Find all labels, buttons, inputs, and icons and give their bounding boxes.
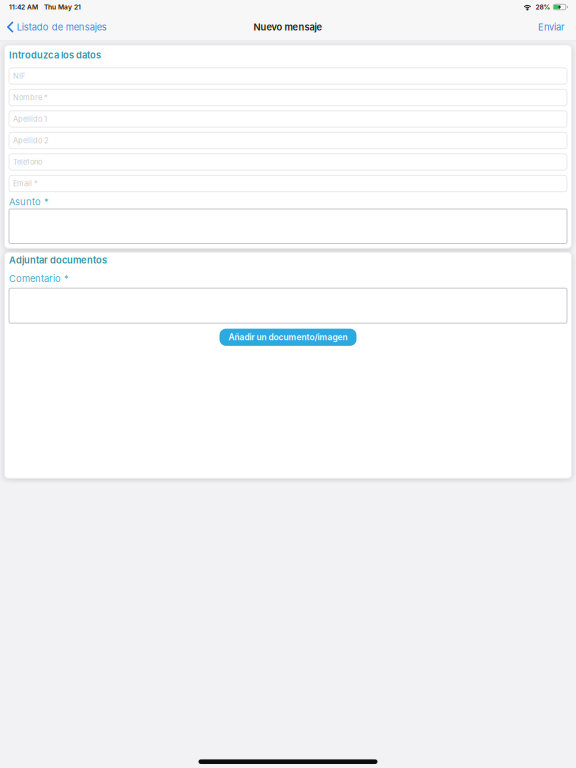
staticText: 11:42 AM [9,3,38,11]
staticText: Thu May 21 [44,3,81,11]
staticText: NIF [13,71,25,80]
staticText: Asunto * [9,196,49,207]
staticText: 28% [535,3,550,11]
button[interactable]: Enviar [528,14,576,40]
button[interactable]: Listado de mensajes [0,14,113,40]
staticText: Listado de mensajes [17,21,107,33]
button[interactable] [9,288,567,323]
staticText: Introduzca los datos [9,49,101,61]
button[interactable] [9,209,567,243]
button[interactable]: Apellido 1 [9,111,567,127]
staticText: Añadir un documento/imagen [228,332,347,342]
button[interactable]: Email * [9,175,567,192]
staticText: Email * [13,179,38,188]
staticText: Apellido 2 [13,136,49,145]
staticText: Comentario * [9,273,69,284]
staticText: Adjuntar documentos [9,254,107,266]
button[interactable]: Nombre * [9,89,567,106]
staticText: Apellido 1 [13,114,47,123]
staticText: Nombre * [13,93,48,102]
staticText: Teléfono [13,157,42,166]
button[interactable]: Apellido 2 [9,132,567,149]
button[interactable]: NIF [9,68,567,84]
staticText: Nuevo mensaje [253,21,322,33]
button[interactable]: Teléfono [9,154,567,170]
staticText: Enviar [538,21,565,33]
button[interactable]: Añadir un documento/imagen [219,329,356,346]
